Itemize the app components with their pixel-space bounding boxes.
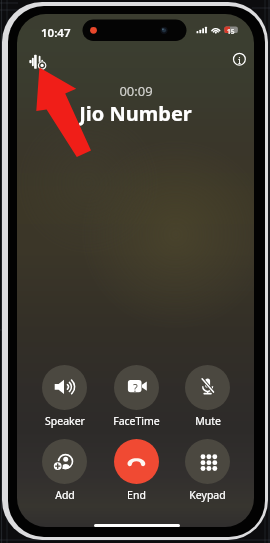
staticText: 10:47: [41, 25, 71, 41]
button[interactable]: End: [108, 439, 165, 501]
button[interactable]: Call recording: [25, 49, 49, 73]
staticText: ?: [133, 380, 138, 392]
staticText: FaceTime: [113, 414, 160, 428]
staticText: Jio Number: [79, 100, 192, 126]
staticText: Mute: [195, 414, 221, 428]
staticText: End: [127, 488, 146, 502]
button[interactable]: Speaker: [36, 365, 93, 427]
staticText: Keypad: [189, 488, 226, 502]
button[interactable]: Mute: [179, 365, 236, 427]
staticText: 15: [227, 27, 235, 34]
button[interactable]: Call details: [231, 51, 248, 68]
staticText: 00:09: [119, 82, 153, 96]
button[interactable]: Add: [36, 439, 93, 501]
staticText: i: [238, 54, 241, 66]
button[interactable]: Keypad: [179, 439, 236, 501]
button[interactable]: FaceTime: [108, 365, 165, 427]
staticText: Add: [55, 488, 75, 502]
staticText: Speaker: [45, 414, 85, 428]
